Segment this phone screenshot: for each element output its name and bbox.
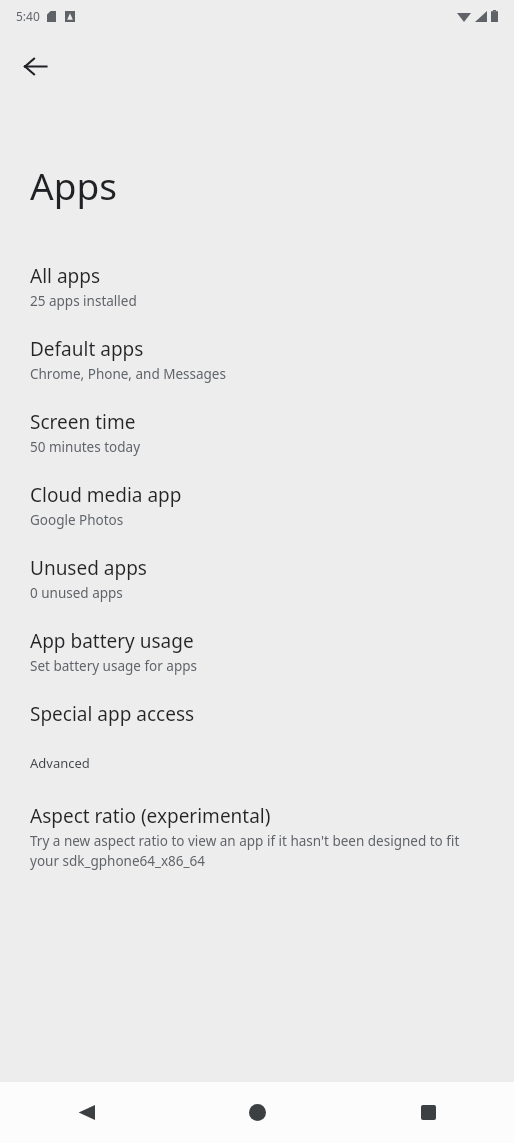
staticText: Apps	[30, 160, 117, 210]
button[interactable]: Aspect ratio (experimental)	[0, 790, 514, 883]
button[interactable]: Recent apps	[343, 1082, 514, 1143]
button[interactable]: Screen time	[0, 396, 514, 469]
button[interactable]: Cloud media app	[0, 469, 514, 542]
button[interactable]: Unused apps	[0, 542, 514, 615]
staticText: Set battery usage for apps	[30, 657, 197, 675]
staticText: 25 apps installed	[30, 292, 137, 310]
button[interactable]: Default apps	[0, 323, 514, 396]
staticText: 50 minutes today	[30, 438, 141, 456]
staticText: Advanced	[30, 754, 90, 772]
staticText: 0 unused apps	[30, 584, 123, 602]
staticText: All apps	[30, 263, 101, 289]
staticText: 5:40	[16, 8, 40, 24]
staticText: Try a new aspect ratio to view an app if…	[30, 832, 490, 870]
button[interactable]: Home	[172, 1082, 343, 1143]
staticText: Google Photos	[30, 511, 124, 529]
staticText: Special app access	[30, 701, 195, 727]
staticText: Unused apps	[30, 555, 147, 581]
staticText: Aspect ratio (experimental)	[30, 803, 271, 829]
staticText: App battery usage	[30, 628, 194, 654]
button[interactable]: All apps	[0, 250, 514, 323]
staticText: Screen time	[30, 409, 136, 435]
staticText: Chrome, Phone, and Messages	[30, 365, 226, 383]
button[interactable]: Special app access	[0, 688, 514, 740]
button[interactable]: Back	[12, 43, 58, 89]
staticText: Cloud media app	[30, 482, 182, 508]
staticText: Default apps	[30, 336, 144, 362]
button[interactable]: Back	[0, 1082, 172, 1143]
button[interactable]: App battery usage	[0, 615, 514, 688]
